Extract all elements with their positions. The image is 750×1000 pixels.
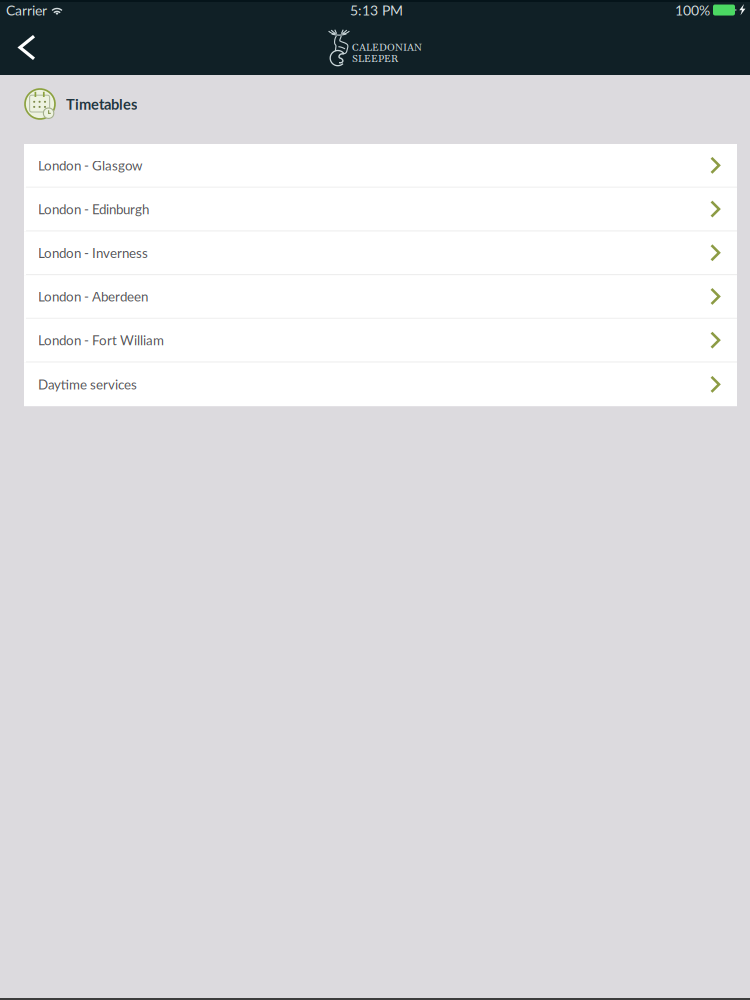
staticText: London - Aberdeen — [38, 288, 148, 304]
staticText: CALEDONIAN — [352, 41, 422, 54]
staticText: London - Glasgow — [38, 157, 142, 173]
staticText: 5:13 PM — [350, 2, 403, 18]
staticText: 100% — [675, 2, 710, 18]
staticText: Timetables — [66, 95, 137, 113]
button[interactable]: Daytime services — [24, 362, 737, 406]
button[interactable]: London - Fort William — [24, 319, 737, 362]
button[interactable]: London - Edinburgh — [24, 188, 737, 231]
staticText: London - Inverness — [38, 245, 148, 261]
button[interactable]: London - Aberdeen — [24, 275, 737, 319]
staticText: SLEEPER — [352, 52, 398, 65]
staticText: Carrier — [6, 2, 47, 18]
button[interactable]: London - Glasgow — [24, 144, 737, 188]
staticText: London - Edinburgh — [38, 201, 149, 217]
button[interactable]: Back — [0, 19, 56, 75]
button[interactable]: London - Inverness — [24, 231, 737, 275]
staticText: London - Fort William — [38, 332, 164, 348]
staticText: Daytime services — [38, 376, 137, 392]
